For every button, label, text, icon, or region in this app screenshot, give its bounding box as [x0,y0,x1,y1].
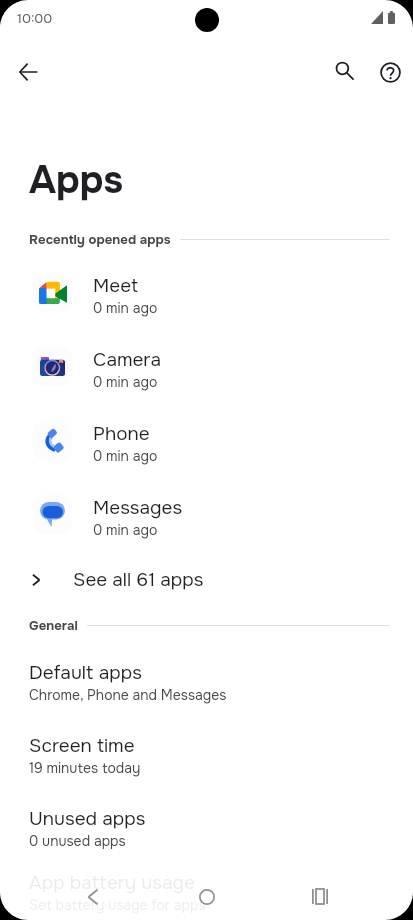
button[interactable]: Default apps [0,646,413,719]
staticText: Phone [93,422,150,446]
button[interactable]: Camera [0,332,413,406]
staticText: Set battery usage for apps [29,896,206,914]
staticText: See all 61 apps [73,568,204,592]
staticText: General [29,617,78,634]
button[interactable]: Messages [0,480,413,554]
button[interactable]: Back [69,873,117,920]
staticText: Apps [29,156,123,204]
staticText: Screen time [29,734,135,758]
staticText: Messages [93,496,183,520]
button[interactable]: Back [4,48,52,96]
button[interactable]: Help [366,48,413,96]
staticText: 0 min ago [93,521,158,539]
button[interactable]: Search [320,46,368,94]
staticText: App battery usage [29,871,195,895]
staticText: 0 unused apps [29,832,126,850]
button[interactable]: Home [183,873,231,920]
button[interactable]: Meet [0,258,413,332]
staticText: Default apps [29,661,142,685]
button[interactable]: Unused apps [0,792,413,865]
button[interactable]: Screen time [0,719,413,792]
staticText: Recently opened apps [29,231,171,248]
staticText: Unused apps [29,807,146,831]
staticText: 0 min ago [93,299,158,317]
button[interactable]: App battery usage [0,865,413,920]
staticText: Camera [93,348,162,372]
button[interactable]: See all 61 apps [0,554,413,606]
button[interactable]: Phone [0,406,413,480]
staticText: Chrome, Phone and Messages [29,686,227,704]
staticText: 0 min ago [93,447,158,465]
staticText: 10:00 [17,10,53,27]
staticText: Meet [93,274,139,298]
staticText: 0 min ago [93,373,158,391]
staticText: 19 minutes today [29,759,141,777]
button[interactable]: Recents [296,873,344,920]
